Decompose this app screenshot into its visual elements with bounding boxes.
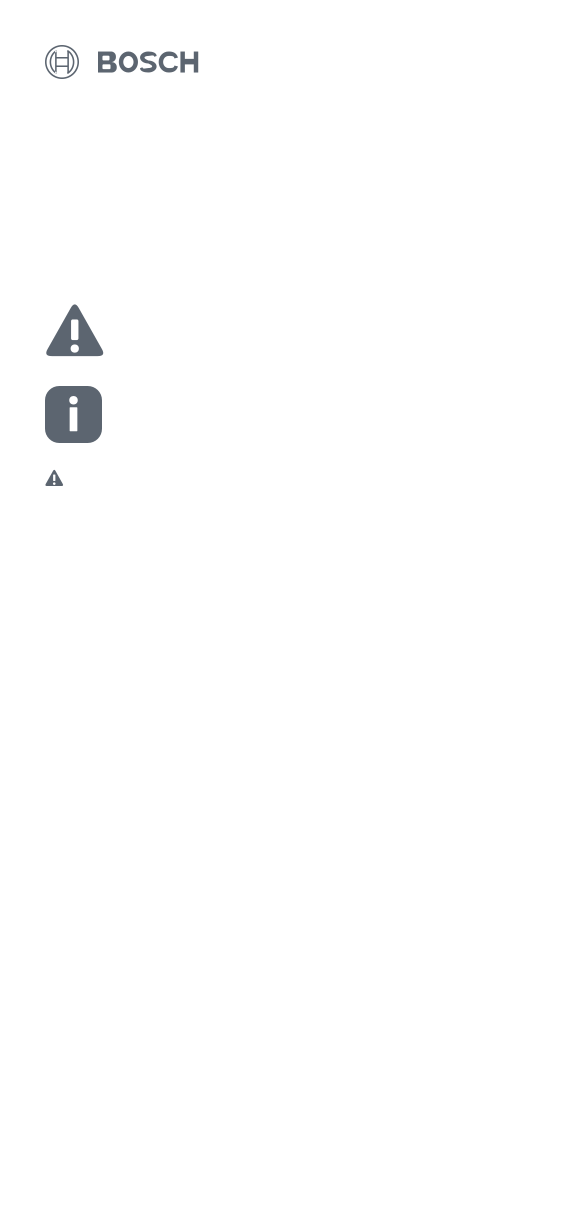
button[interactable]: Notice: [0, 470, 63, 486]
button[interactable]: Warning: [0, 305, 104, 356]
button[interactable]: Bosch: [0, 0, 201, 79]
button[interactable]: Information: [0, 386, 102, 443]
